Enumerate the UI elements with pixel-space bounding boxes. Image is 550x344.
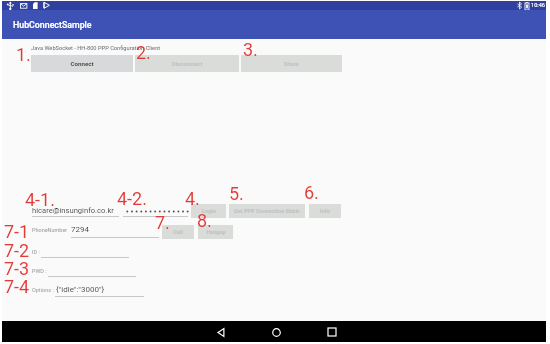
staticText: Options : [32,287,54,293]
staticText: Hangup [206,229,226,235]
button[interactable]: Home [268,324,284,340]
staticText: 3. [243,39,258,60]
staticText: PhoneNumber [32,227,68,233]
button[interactable]: Login [191,204,226,218]
button[interactable]: Info [309,204,341,218]
staticText: ID : [32,249,40,255]
button[interactable]: Get PPP Connection Static [229,204,305,218]
staticText: 7-2 [4,240,30,261]
button[interactable]: Disconnect [135,55,239,72]
staticText: Call [173,229,183,235]
staticText: 6. [304,182,319,203]
staticText: 7294 [71,225,89,234]
staticText: 4. [185,188,200,209]
staticText: 8. [197,210,212,231]
staticText: Get PPP Connection Static [234,208,300,214]
staticText: 7. [155,212,170,233]
staticText: 10:46 [531,2,545,9]
staticText: 5. [229,183,244,204]
staticText: 2. [136,42,151,63]
staticText: Store [284,60,299,67]
staticText: Info [320,208,330,214]
staticText: 1. [16,44,31,65]
staticText: 4-1. [25,189,55,210]
button[interactable]: Call [162,225,194,239]
staticText: 7-4 [4,276,30,297]
staticText: 7-3 [4,258,30,279]
staticText: 7-1 [4,221,30,242]
staticText: {"idle":"3000"} [56,285,105,294]
button[interactable]: Connect [31,55,133,72]
button[interactable]: Hangup [198,225,233,239]
staticText: Login [202,208,216,214]
button[interactable]: Back [213,324,229,340]
staticText: Java WebSocket - HH-800 PPP Configuratio… [31,45,161,52]
staticText: Connect [70,60,94,67]
button[interactable]: Store [241,55,342,72]
button[interactable]: Recent apps [324,324,340,340]
staticText: 4-2. [117,188,147,209]
staticText: hicare@insunginfo.co.kr [32,206,114,215]
staticText: PWD : [32,268,47,274]
staticText: Disconnect [171,60,203,67]
staticText: HubConnectSample [13,20,92,30]
